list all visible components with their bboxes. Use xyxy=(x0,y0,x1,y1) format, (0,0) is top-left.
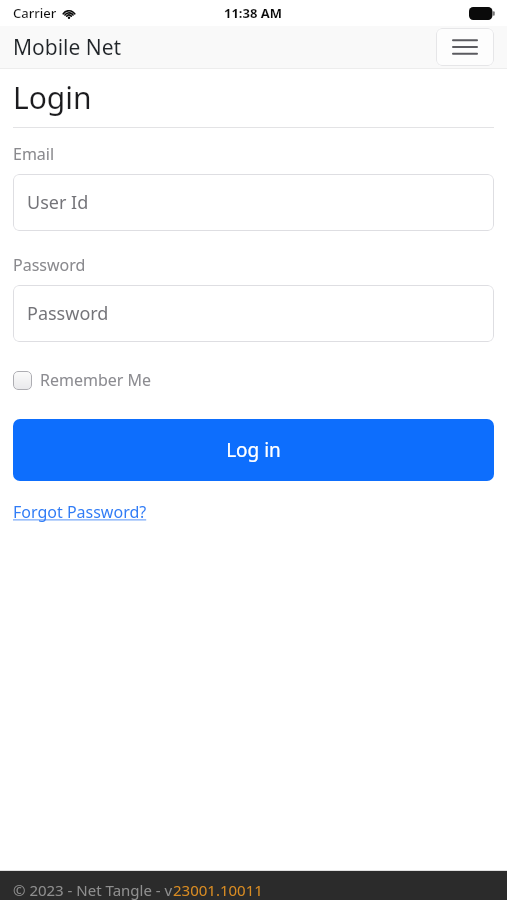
button[interactable]: Remember Me xyxy=(13,369,152,391)
button[interactable]: Forgot Password? xyxy=(13,501,147,523)
button[interactable]: Password xyxy=(13,285,494,342)
staticText: Password xyxy=(13,254,86,276)
staticText: 23001.10011 xyxy=(173,880,263,900)
button[interactable]: Open navigation menu xyxy=(436,28,494,66)
button[interactable]: Log in xyxy=(13,419,494,481)
staticText: Log in xyxy=(226,437,281,463)
staticText: Remember Me xyxy=(40,369,152,391)
staticText: Mobile Net xyxy=(13,33,122,62)
staticText: Forgot Password? xyxy=(13,501,147,523)
staticText: 11:38 AM xyxy=(224,4,283,22)
staticText: Password xyxy=(27,301,109,326)
staticText: Login xyxy=(13,77,92,118)
staticText: Carrier xyxy=(13,4,57,22)
staticText: Email xyxy=(13,143,55,165)
staticText: User Id xyxy=(27,190,89,215)
button[interactable]: User Id xyxy=(13,174,494,231)
staticText: © 2023 - Net Tangle - v xyxy=(13,880,173,900)
